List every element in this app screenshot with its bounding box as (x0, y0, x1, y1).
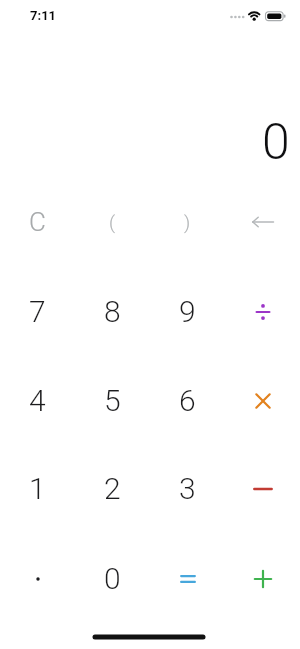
staticText: ) (184, 211, 191, 233)
button[interactable] (225, 534, 300, 623)
button[interactable]: 4 (0, 356, 75, 445)
button[interactable] (225, 444, 300, 533)
staticText: 0 (104, 561, 121, 596)
button[interactable] (225, 356, 300, 445)
staticText: 7 (29, 294, 46, 329)
button[interactable]: 7 (0, 267, 75, 356)
button[interactable] (0, 534, 75, 623)
button[interactable]: 5 (75, 356, 150, 445)
button[interactable]: 2 (75, 444, 150, 533)
staticText: 9 (179, 294, 196, 329)
button[interactable]: 1 (0, 444, 75, 533)
button[interactable]: ( (75, 177, 150, 266)
staticText: C (29, 207, 46, 237)
button[interactable]: ) (150, 177, 225, 266)
staticText: 1 (29, 471, 46, 506)
button[interactable]: 0 (75, 534, 150, 623)
staticText: 0 (262, 113, 290, 172)
button[interactable]: 8 (75, 267, 150, 356)
button[interactable] (225, 177, 300, 266)
staticText: 4 (29, 383, 46, 418)
staticText: 5 (104, 383, 121, 418)
staticText: 6 (179, 383, 196, 418)
button[interactable]: C (0, 177, 75, 266)
staticText: 2 (104, 471, 121, 506)
button[interactable] (150, 534, 225, 623)
staticText: 7:11 (30, 8, 57, 23)
staticText: 8 (104, 294, 121, 329)
button[interactable]: 6 (150, 356, 225, 445)
button[interactable] (225, 267, 300, 356)
button[interactable]: 3 (150, 444, 225, 533)
staticText: 3 (179, 471, 196, 506)
button[interactable]: 9 (150, 267, 225, 356)
staticText: ( (109, 211, 116, 233)
